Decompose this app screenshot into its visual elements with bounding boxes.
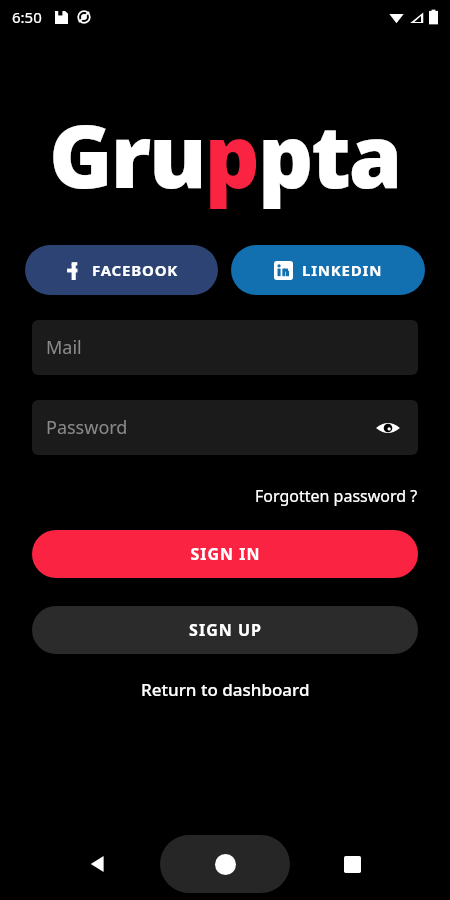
staticText: FACEBOOK bbox=[92, 260, 179, 280]
staticText: Return to dashboard bbox=[141, 678, 310, 701]
button[interactable]: Password bbox=[32, 400, 418, 455]
staticText: Gruppta bbox=[49, 96, 401, 213]
staticText: LINKEDIN bbox=[302, 260, 383, 280]
staticText: Forgotten password ? bbox=[255, 485, 418, 507]
staticText: SIGN IN bbox=[190, 543, 261, 565]
button[interactable]: LINKEDIN bbox=[231, 245, 425, 295]
button[interactable]: SIGN UP bbox=[32, 606, 418, 654]
button[interactable]: SIGN IN bbox=[32, 530, 418, 578]
staticText: 6:50 bbox=[12, 7, 42, 27]
staticText: SIGN UP bbox=[189, 619, 262, 641]
button[interactable]: Home bbox=[196, 835, 254, 893]
button[interactable]: FACEBOOK bbox=[25, 245, 218, 295]
staticText: Password bbox=[46, 415, 128, 440]
button[interactable]: Show password bbox=[368, 408, 408, 448]
button[interactable]: Mail bbox=[32, 320, 418, 375]
button[interactable]: Recent apps bbox=[323, 835, 381, 893]
button[interactable]: Back bbox=[69, 835, 127, 893]
staticText: Mail bbox=[46, 335, 82, 360]
button[interactable]: Forgotten password ? bbox=[253, 482, 420, 510]
button[interactable]: Return to dashboard bbox=[135, 674, 316, 705]
